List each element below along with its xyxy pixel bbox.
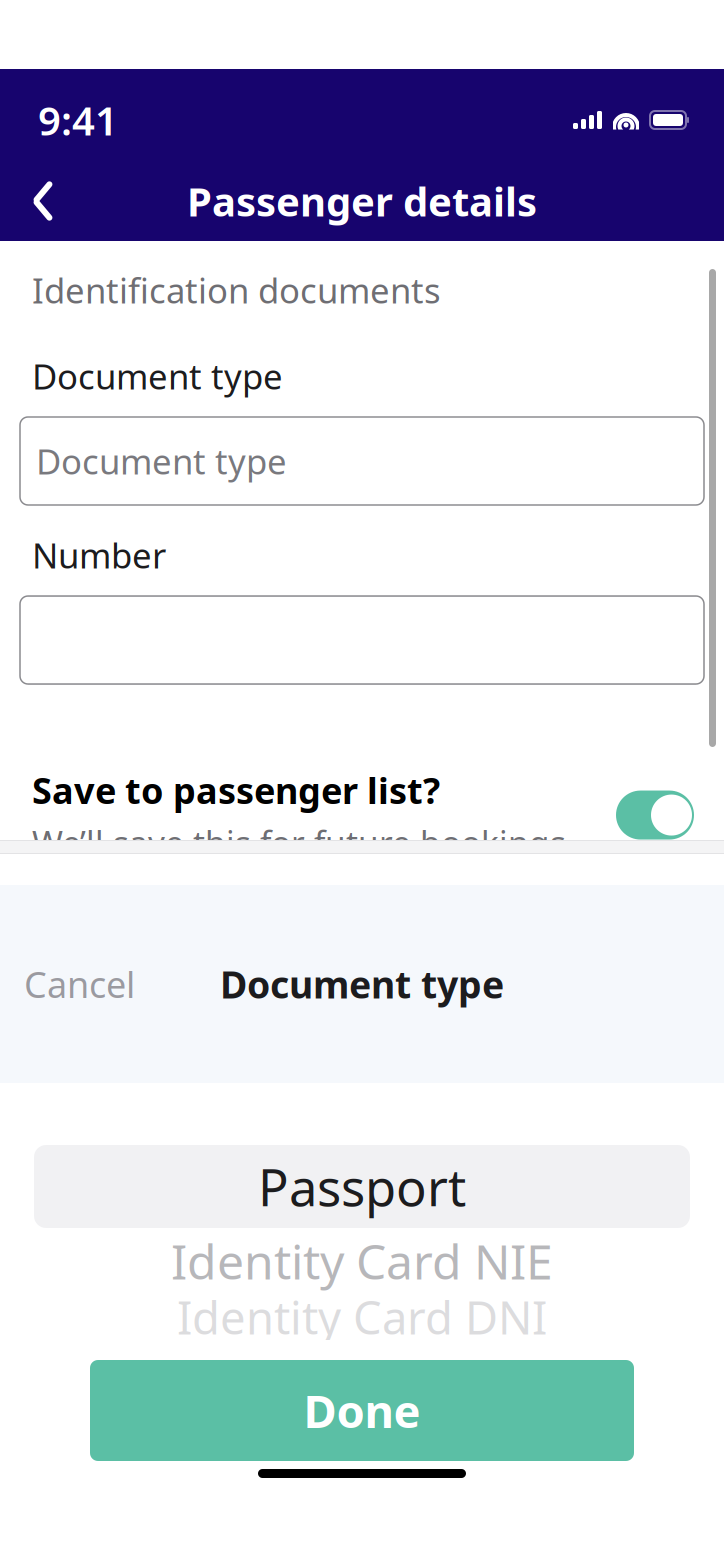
staticText: Document type [220, 959, 504, 1009]
staticText: Save to passenger list? [32, 766, 440, 814]
staticText: Identification documents [32, 267, 441, 313]
button[interactable]: Save to passenger list? [20, 766, 704, 864]
button[interactable]: Back [10, 168, 76, 234]
staticText: We’ll save this for future bookings [32, 820, 566, 864]
staticText: Document type [36, 438, 287, 484]
staticText: Cancel [24, 960, 135, 1008]
button[interactable]: Identity Card DNI [0, 1294, 724, 1340]
staticText: Passenger details [187, 174, 537, 227]
staticText: Passport [258, 1153, 466, 1220]
button[interactable]: Done [0, 1360, 724, 1461]
staticText: Identity Card NIE [171, 1229, 553, 1293]
button[interactable]: Document type [20, 417, 704, 505]
button[interactable]: Identity Card NIE [0, 1228, 724, 1294]
button[interactable] [20, 596, 704, 684]
staticText: Document type [32, 353, 283, 399]
staticText: Number [32, 532, 166, 578]
button[interactable]: Passport [0, 1145, 724, 1228]
staticText: Done [303, 1380, 420, 1441]
staticText: Identity Card DNI [177, 1287, 547, 1347]
staticText: 9:41 [38, 93, 118, 146]
button[interactable]: Cancel [14, 950, 145, 1018]
